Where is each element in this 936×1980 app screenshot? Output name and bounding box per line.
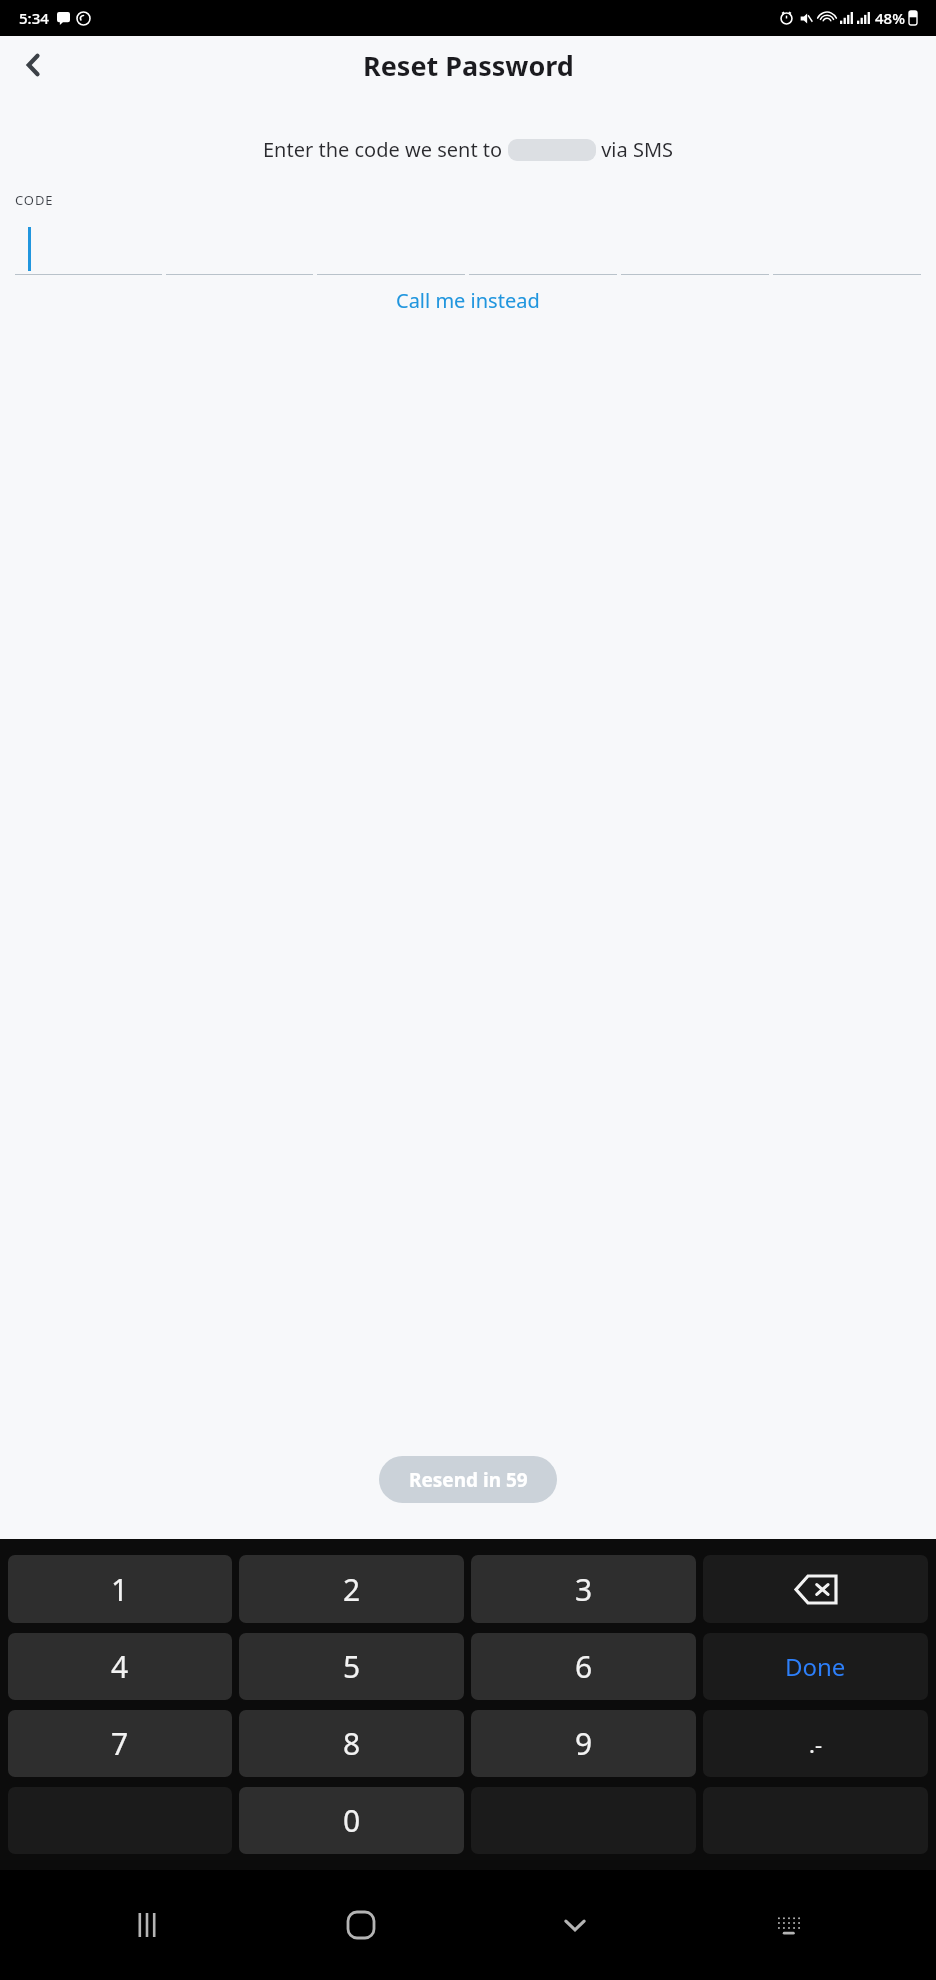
staticText: Call me instead bbox=[396, 287, 540, 314]
staticText: via SMS bbox=[596, 136, 674, 163]
staticText: CODE bbox=[15, 191, 54, 209]
button[interactable]: .- bbox=[703, 1710, 928, 1777]
staticText: 4 bbox=[111, 1646, 129, 1687]
staticText: 5 bbox=[343, 1646, 361, 1687]
staticText: Resend in 59 bbox=[409, 1467, 528, 1493]
button[interactable]: Hide keyboard bbox=[548, 1898, 602, 1952]
button[interactable]: Back bbox=[10, 41, 58, 89]
staticText: 6 bbox=[575, 1646, 593, 1687]
staticText: 8 bbox=[343, 1723, 361, 1764]
button[interactable]: 8 bbox=[239, 1710, 464, 1777]
staticText: 0 bbox=[343, 1800, 361, 1841]
staticText: 1 bbox=[111, 1569, 129, 1610]
staticText: 48% bbox=[875, 8, 905, 28]
button[interactable]: Change keyboard bbox=[762, 1898, 816, 1952]
staticText: Done bbox=[785, 1650, 846, 1683]
button[interactable]: Call me instead bbox=[386, 284, 550, 317]
button[interactable]: Backspace bbox=[703, 1555, 928, 1623]
staticText: 2 bbox=[343, 1569, 361, 1610]
button[interactable]: Recents bbox=[120, 1898, 174, 1952]
button[interactable]: 1 bbox=[8, 1555, 232, 1623]
button[interactable]: Done bbox=[703, 1633, 928, 1700]
button[interactable]: 3 bbox=[471, 1555, 696, 1623]
button[interactable]: 0 bbox=[239, 1787, 464, 1854]
button[interactable]: Home bbox=[334, 1898, 388, 1952]
button[interactable]: 5 bbox=[239, 1633, 464, 1700]
staticText: Reset Password bbox=[363, 47, 574, 84]
staticText: 9 bbox=[575, 1723, 593, 1764]
button[interactable]: Resend in 59 bbox=[379, 1456, 557, 1503]
button[interactable]: 7 bbox=[8, 1710, 232, 1777]
button[interactable]: 6 bbox=[471, 1633, 696, 1700]
button[interactable]: 9 bbox=[471, 1710, 696, 1777]
staticText: .- bbox=[809, 1729, 822, 1759]
button[interactable]: 2 bbox=[239, 1555, 464, 1623]
staticText: 7 bbox=[111, 1723, 129, 1764]
staticText: Enter the code we sent to bbox=[263, 136, 508, 163]
button[interactable]: 4 bbox=[8, 1633, 232, 1700]
staticText: 3 bbox=[575, 1569, 593, 1610]
staticText: 5:34 bbox=[19, 8, 49, 28]
